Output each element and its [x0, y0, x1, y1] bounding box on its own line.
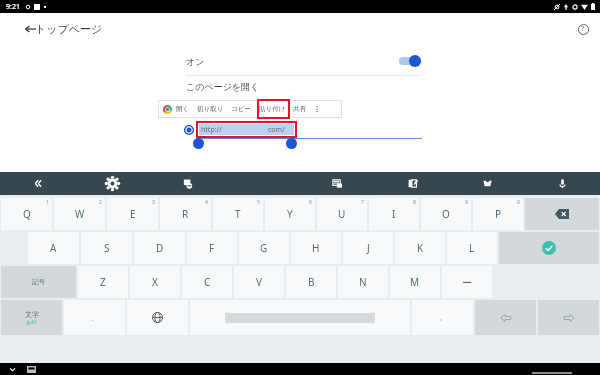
button[interactable]: Language [127, 300, 188, 335]
button[interactable]: Back [20, 19, 40, 39]
staticText: L [469, 241, 475, 255]
button[interactable]: Hide keyboard [8, 365, 17, 374]
button[interactable]: 切り取り [197, 105, 224, 113]
button[interactable]: 開く [176, 105, 190, 113]
staticText: R [182, 207, 189, 221]
button[interactable]: Cursor right [538, 300, 599, 335]
staticText: W [75, 207, 85, 221]
button[interactable]: A [28, 232, 79, 264]
staticText: O [442, 207, 450, 221]
button[interactable]: Switch keyboard [27, 365, 36, 374]
staticText: P [495, 207, 502, 221]
button[interactable]: 文字 [1, 300, 62, 335]
staticText: トップページ [35, 22, 103, 36]
button[interactable]: S [81, 232, 132, 264]
button[interactable]: K [395, 232, 445, 264]
staticText: 8 [413, 199, 416, 206]
button[interactable]: 4 [160, 198, 211, 230]
button[interactable]: 共有 [293, 105, 306, 113]
staticText: Z [100, 275, 106, 289]
button[interactable] [396, 52, 428, 70]
button[interactable]: 貼り付け [259, 105, 286, 113]
staticText: 7 [361, 199, 364, 206]
button[interactable]: Z [78, 266, 128, 298]
button[interactable]: L [447, 232, 497, 264]
staticText: 、 [91, 313, 98, 322]
button[interactable]: 2 [54, 198, 105, 230]
button[interactable]: C [182, 266, 232, 298]
staticText: 文字 [25, 310, 39, 319]
staticText: H [312, 241, 320, 255]
button[interactable]: Space [190, 300, 410, 335]
staticText: T [235, 207, 241, 221]
button[interactable]: Collapse [0, 172, 75, 195]
button[interactable]: Edit [375, 172, 450, 195]
button[interactable]: 9 [421, 198, 471, 230]
staticText: M [410, 275, 420, 289]
button[interactable]: H [291, 232, 341, 264]
button[interactable]: V [234, 266, 284, 298]
button[interactable]: Settings [75, 172, 150, 195]
staticText: C [204, 275, 211, 289]
staticText: 0 [517, 199, 520, 206]
staticText: D [156, 241, 164, 255]
staticText: V [256, 275, 262, 289]
button[interactable]: 7 [317, 198, 367, 230]
staticText: com/ [268, 125, 285, 135]
button[interactable]: J [343, 232, 393, 264]
button[interactable]: Clipboard [150, 172, 225, 195]
staticText: 。 [439, 313, 446, 322]
button[interactable]: Help [574, 20, 592, 38]
staticText: 9 [465, 199, 468, 206]
staticText: 5 [257, 199, 260, 206]
staticText: F [209, 241, 215, 255]
button[interactable]: F [187, 232, 237, 264]
staticText: 9:21 [6, 2, 20, 12]
button[interactable]: M [390, 266, 440, 298]
button[interactable]: Layouts [300, 172, 375, 195]
button[interactable]: X [130, 266, 180, 298]
staticText: U [338, 207, 346, 221]
staticText: コピー [231, 105, 251, 113]
staticText: オン [186, 56, 205, 67]
staticText: A [50, 241, 57, 255]
button[interactable]: ー [442, 266, 492, 298]
staticText: あA1 [26, 319, 38, 326]
staticText: Y [287, 207, 293, 221]
staticText: N [359, 275, 367, 289]
button[interactable]: Enter [499, 232, 599, 264]
button[interactable]: コピー [231, 105, 251, 113]
button[interactable]: 5 [213, 198, 263, 230]
button[interactable]: 記号 [1, 266, 76, 298]
staticText: S [104, 241, 110, 255]
button[interactable]: 8 [369, 198, 419, 230]
button[interactable]: G [239, 232, 289, 264]
button[interactable]: 1 [1, 198, 52, 230]
staticText: Q [23, 207, 31, 221]
staticText: 開く [176, 105, 190, 113]
button[interactable]: Themes [450, 172, 525, 195]
staticText: J [367, 241, 370, 255]
staticText: G [260, 241, 268, 255]
button[interactable]: 3 [107, 198, 158, 230]
staticText: ? [581, 24, 585, 34]
button[interactable]: Backspace [525, 198, 599, 230]
staticText: I [392, 207, 396, 221]
staticText: B [308, 275, 315, 289]
button[interactable]: D [134, 232, 185, 264]
staticText: 1 [46, 199, 49, 206]
staticText: このページを開く [186, 81, 260, 92]
button[interactable]: 0 [473, 198, 523, 230]
button[interactable]: Voice input [525, 172, 600, 195]
staticText: ー [462, 276, 472, 289]
button[interactable]: 6 [265, 198, 315, 230]
staticText: X [152, 275, 158, 289]
button[interactable]: More options [312, 104, 322, 114]
staticText: K [417, 241, 424, 255]
button[interactable]: B [286, 266, 336, 298]
button[interactable]: Cursor left [475, 300, 536, 335]
button[interactable]: N [338, 266, 388, 298]
staticText: 4 [205, 199, 208, 206]
